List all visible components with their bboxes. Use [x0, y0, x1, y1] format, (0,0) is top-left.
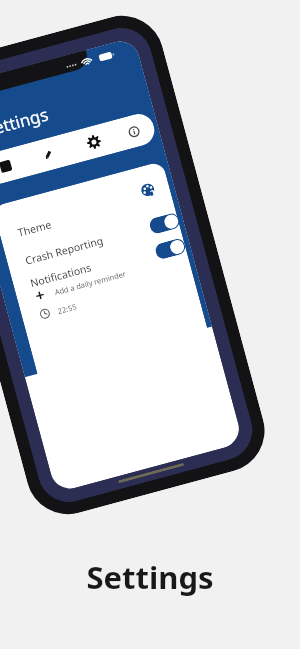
staticText: Theme — [16, 217, 53, 240]
staticText: Crash Reporting — [24, 233, 105, 268]
staticText: Notifications — [29, 260, 93, 290]
staticText: Settings — [86, 556, 214, 598]
button[interactable]: Info — [127, 125, 141, 138]
button[interactable] — [148, 212, 180, 235]
staticText: Settings — [0, 102, 51, 141]
button[interactable]: Theme colour — [140, 182, 156, 198]
button[interactable]: Home — [0, 160, 12, 173]
staticText: 22:55 — [56, 301, 78, 316]
button[interactable] — [154, 237, 187, 260]
button[interactable]: Edit — [41, 148, 55, 162]
button[interactable]: Settings — [85, 133, 102, 151]
staticText: Add a daily reminder — [53, 268, 128, 297]
